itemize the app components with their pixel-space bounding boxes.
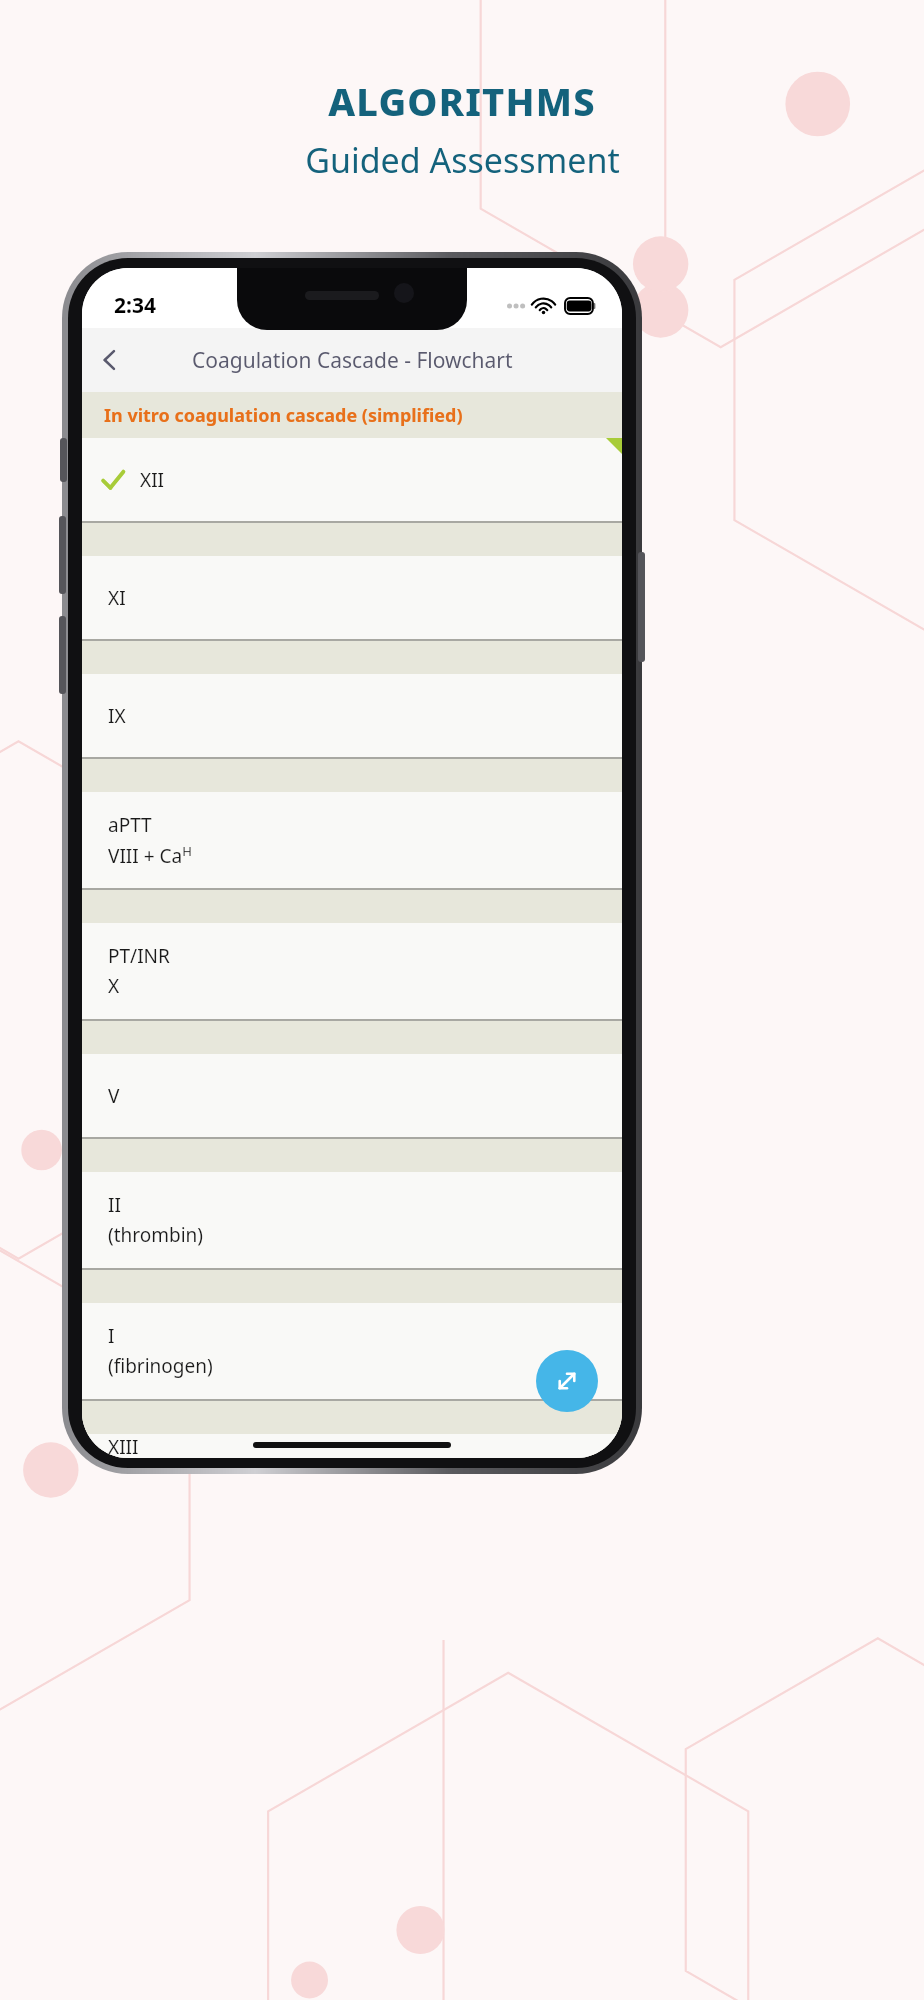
staticText: II bbox=[108, 1192, 121, 1218]
staticText: 2:34 bbox=[114, 291, 156, 320]
button[interactable]: XIII bbox=[82, 1434, 622, 1458]
button[interactable]: Back bbox=[82, 332, 138, 388]
staticText: (thrombin) bbox=[108, 1222, 204, 1248]
staticText: XIII bbox=[108, 1434, 139, 1458]
button[interactable]: PT/INR bbox=[82, 923, 622, 1019]
staticText: V bbox=[108, 1083, 120, 1109]
button[interactable]: II bbox=[82, 1172, 622, 1268]
button[interactable]: Expand bbox=[536, 1350, 598, 1412]
staticText: Guided Assessment bbox=[305, 137, 620, 183]
staticText: In vitro coagulation cascade (simplified… bbox=[104, 403, 463, 428]
staticText: X bbox=[108, 973, 120, 999]
staticText: Coagulation Cascade - Flowchart bbox=[192, 346, 513, 375]
staticText: PT/INR bbox=[108, 943, 170, 969]
staticText: XII bbox=[140, 467, 165, 493]
staticText: (fibrinogen) bbox=[108, 1353, 213, 1379]
button[interactable]: XI bbox=[82, 556, 622, 639]
staticText: XI bbox=[108, 585, 126, 611]
button[interactable]: I bbox=[82, 1303, 622, 1399]
staticText: aPTT bbox=[108, 812, 152, 838]
button[interactable]: V bbox=[82, 1054, 622, 1137]
staticText: IX bbox=[108, 703, 126, 729]
button[interactable]: aPTT bbox=[82, 792, 622, 888]
staticText: VIII + CaH bbox=[108, 842, 192, 868]
staticText: I bbox=[108, 1323, 115, 1349]
button[interactable]: XII bbox=[82, 438, 622, 521]
staticText: ALGORITHMS bbox=[328, 75, 596, 127]
button[interactable]: IX bbox=[82, 674, 622, 757]
